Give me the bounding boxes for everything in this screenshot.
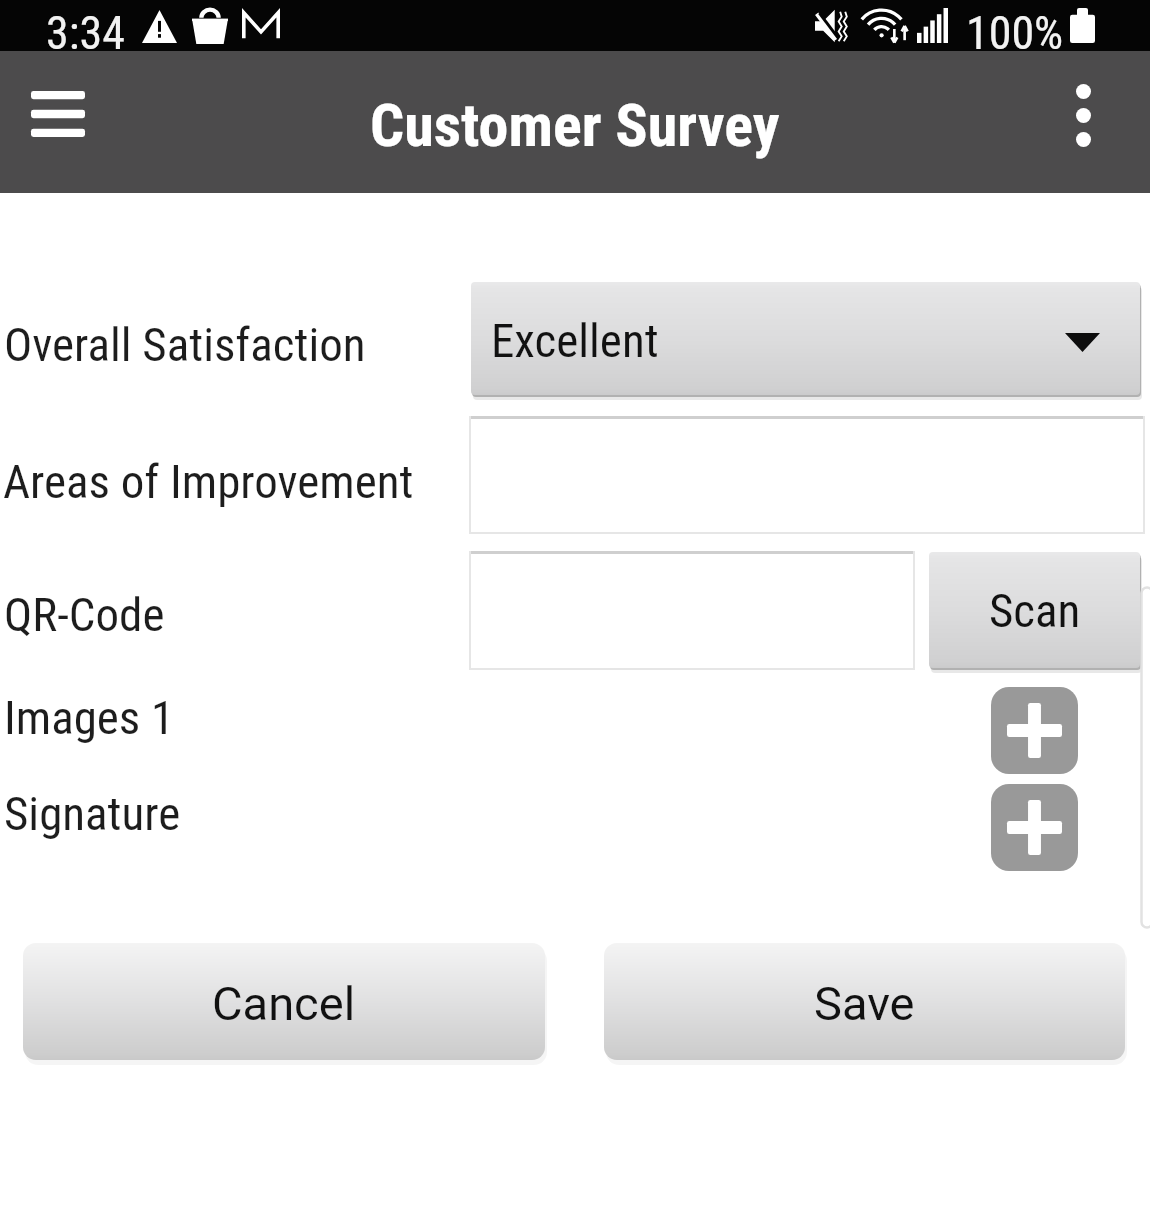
staticText: Signature xyxy=(4,786,181,841)
button[interactable]: Areas of Improvement xyxy=(469,416,1145,534)
button[interactable]: Save xyxy=(604,943,1125,1060)
staticText: Cancel xyxy=(212,976,356,1031)
staticText: Excellent xyxy=(491,313,659,368)
button[interactable]: More options xyxy=(1041,73,1125,157)
button[interactable]: QR-Code xyxy=(469,551,915,670)
button[interactable]: Add image xyxy=(991,687,1078,774)
staticText: Areas of Improvement xyxy=(3,454,414,509)
button[interactable]: Add signature xyxy=(991,784,1078,871)
staticText: Images 1 xyxy=(4,690,175,745)
button[interactable]: Overall Satisfaction: Excellent xyxy=(471,282,1140,395)
staticText: 100% xyxy=(966,6,1064,57)
staticText: Customer Survey xyxy=(370,90,780,160)
button[interactable]: Scan xyxy=(929,552,1140,668)
staticText: Scan xyxy=(989,583,1081,638)
staticText: Save xyxy=(814,976,915,1031)
button[interactable]: Open navigation menu xyxy=(8,71,108,157)
staticText: Overall Satisfaction xyxy=(4,317,366,372)
button[interactable]: Cancel xyxy=(23,943,545,1060)
staticText: QR-Code xyxy=(4,587,165,642)
staticText: 3:34 xyxy=(46,6,125,57)
